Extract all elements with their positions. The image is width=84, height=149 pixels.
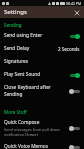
staticText: Send using Enter: [4, 32, 43, 39]
staticText: Send messages from pull down notificatio…: [4, 127, 66, 137]
staticText: Signatures: [4, 58, 80, 65]
button[interactable]: Quick Compose: [0, 116, 84, 140]
staticText: 2 Seconds: [58, 46, 80, 52]
staticText: Sending: [4, 22, 22, 28]
button[interactable]: Send Delay: [0, 42, 84, 55]
staticText: 08:42 PM: [66, 1, 82, 6]
button[interactable]: Quick Voice Memos: [0, 140, 84, 149]
staticText: Quick Voice Memos: [4, 143, 48, 149]
button[interactable]: Play Sent Sound: [0, 68, 84, 81]
button[interactable]: Close Keyboard after Sending: [0, 81, 84, 101]
staticText: Play Sent Sound: [4, 71, 41, 78]
button[interactable]: Signatures: [0, 55, 84, 68]
staticText: Quick Compose: [4, 119, 40, 126]
staticText: Settings: [4, 8, 27, 16]
button[interactable]: Send using Enter: [0, 29, 84, 42]
staticText: More Stuff: [4, 109, 27, 115]
staticText: Send Delay: [4, 45, 58, 52]
staticText: Close Keyboard after Sending: [4, 84, 66, 98]
button[interactable]: Close: [72, 8, 81, 17]
